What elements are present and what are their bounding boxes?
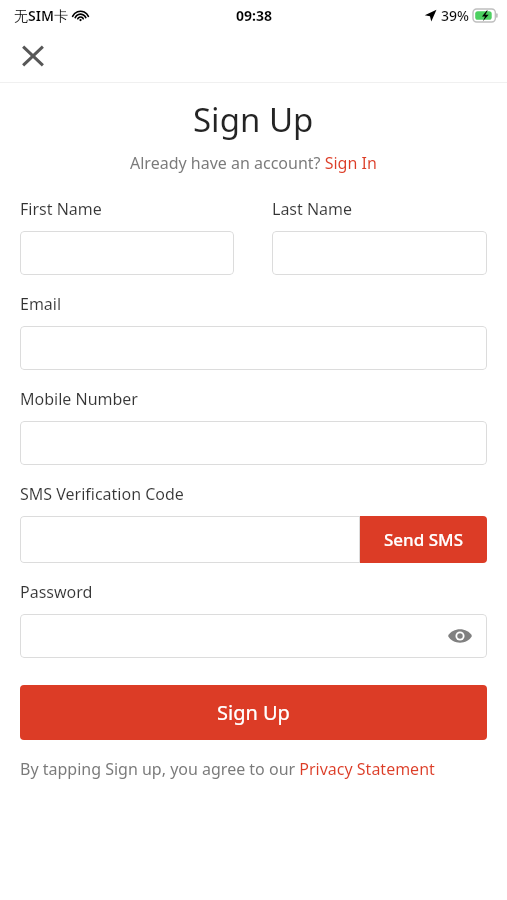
button[interactable]: Close [14, 37, 52, 75]
staticText: 09:38 [236, 6, 272, 25]
staticText: Email [20, 293, 62, 315]
button[interactable]: Send SMS [360, 516, 487, 563]
staticText: Password [20, 581, 93, 603]
staticText: First Name [20, 198, 102, 220]
button[interactable] [272, 231, 487, 275]
staticText: By tapping Sign up, you agree to our Pri… [20, 758, 435, 780]
staticText: Send SMS [384, 528, 464, 551]
button[interactable]: Show password [443, 619, 477, 653]
button[interactable] [20, 421, 487, 465]
staticText: Mobile Number [20, 388, 138, 410]
staticText: 39% [441, 6, 469, 25]
staticText: SMS Verification Code [20, 483, 184, 505]
button[interactable]: Show password [20, 614, 487, 658]
staticText: Last Name [272, 198, 353, 220]
staticText: Already have an account? Sign In [130, 152, 377, 174]
button[interactable] [20, 326, 487, 370]
button[interactable]: Sign Up [20, 685, 487, 740]
button[interactable] [20, 516, 360, 563]
staticText: Sign Up [217, 699, 290, 726]
button[interactable]: By tapping Sign up, you agree to our Pri… [20, 758, 435, 780]
staticText: Sign Up [193, 97, 314, 142]
staticText: 无SIM卡 [14, 6, 68, 25]
button[interactable] [20, 231, 234, 275]
button[interactable]: Already have an account? Sign In [130, 152, 377, 174]
